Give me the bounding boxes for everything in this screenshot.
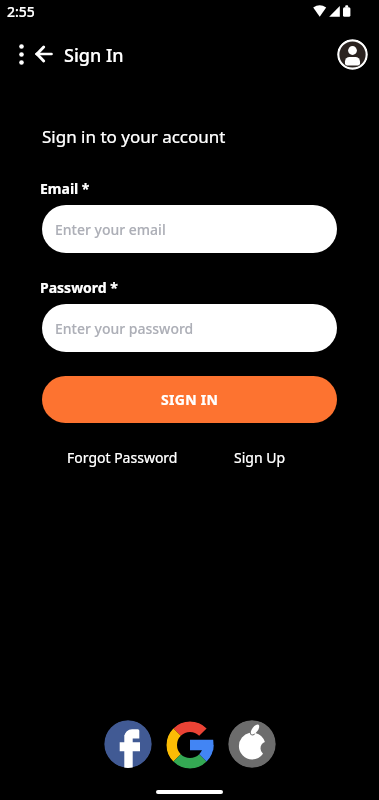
button[interactable] (228, 720, 276, 768)
staticText: Enter your password (55, 319, 194, 338)
button[interactable] (337, 39, 368, 70)
staticText: Forgot Password (67, 448, 178, 467)
button[interactable]: Enter your email (42, 205, 337, 253)
button[interactable] (104, 720, 152, 768)
button[interactable]: Sign Up (210, 444, 310, 470)
button[interactable]: Enter your password (42, 304, 337, 352)
staticText: Sign in to your account (42, 125, 226, 148)
staticText: Sign Up (234, 448, 286, 467)
button[interactable]: Forgot Password (62, 444, 182, 470)
button[interactable] (30, 42, 56, 68)
button[interactable]: SIGN IN (42, 376, 337, 423)
staticText: Enter your email (55, 220, 166, 239)
staticText: Sign In (64, 43, 124, 68)
staticText: Email * (40, 179, 90, 198)
button[interactable] (166, 721, 214, 769)
staticText: 2:55 (7, 2, 35, 21)
staticText: SIGN IN (161, 390, 219, 409)
staticText: Password * (40, 278, 118, 297)
